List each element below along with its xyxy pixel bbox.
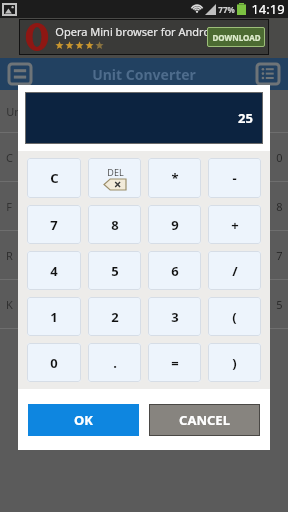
- staticText: /: [232, 262, 238, 280]
- button[interactable]: 9: [148, 205, 201, 244]
- button[interactable]: -: [208, 158, 261, 198]
- staticText: 5: [276, 297, 283, 312]
- staticText: 0: [50, 354, 58, 372]
- button[interactable]: DEL: [88, 158, 141, 198]
- button[interactable]: K: [0, 280, 288, 328]
- staticText: (: [232, 308, 237, 326]
- staticText: Unit Converter: [92, 65, 196, 84]
- button[interactable]: OK: [28, 404, 139, 436]
- button[interactable]: Menu: [9, 64, 31, 84]
- staticText: 9: [171, 216, 179, 234]
- staticText: 1: [50, 308, 58, 326]
- button[interactable]: C: [27, 158, 81, 198]
- button[interactable]: .: [88, 343, 141, 382]
- staticText: *: [171, 169, 179, 187]
- staticText: Opera Mini browser for Android: [55, 24, 220, 39]
- button[interactable]: R: [0, 231, 288, 279]
- button[interactable]: List options: [257, 64, 279, 84]
- button[interactable]: CANCEL: [149, 404, 260, 436]
- staticText: 25: [238, 109, 253, 127]
- staticText: =: [171, 354, 179, 372]
- staticText: CANCEL: [179, 411, 230, 429]
- staticText: R: [6, 248, 13, 263]
- button[interactable]: 1: [27, 297, 81, 336]
- staticText: -: [232, 169, 237, 187]
- button[interactable]: (: [208, 297, 261, 336]
- button[interactable]: F: [0, 182, 288, 230]
- staticText: DOWNLOAD: [212, 32, 261, 43]
- staticText: K: [6, 297, 13, 312]
- button[interactable]: ): [208, 343, 261, 382]
- button[interactable]: Unit: [0, 90, 288, 132]
- button[interactable]: =: [148, 343, 201, 382]
- button[interactable]: Opera Mini browser for Android: [0, 18, 288, 58]
- staticText: C: [6, 150, 13, 165]
- staticText: Unit: [6, 104, 28, 119]
- staticText: 2: [111, 308, 119, 326]
- button[interactable]: 8: [88, 205, 141, 244]
- staticText: ): [232, 354, 237, 372]
- button[interactable]: DOWNLOAD: [207, 27, 265, 47]
- staticText: 8: [111, 216, 119, 234]
- staticText: 6: [171, 262, 179, 280]
- button[interactable]: C: [0, 133, 288, 181]
- staticText: C: [50, 169, 59, 187]
- staticText: 0: [276, 150, 283, 165]
- staticText: 7: [50, 216, 58, 234]
- staticText: OK: [74, 411, 93, 429]
- staticText: +: [231, 216, 239, 234]
- staticText: 4: [50, 262, 58, 280]
- staticText: F: [6, 199, 12, 214]
- button[interactable]: *: [148, 158, 201, 198]
- button[interactable]: 7: [27, 205, 81, 244]
- button[interactable]: 0: [27, 343, 81, 382]
- staticText: 3: [171, 308, 179, 326]
- staticText: 5: [111, 262, 119, 280]
- button[interactable]: /: [208, 251, 261, 290]
- staticText: 7: [276, 248, 283, 263]
- staticText: 14:19: [251, 0, 285, 18]
- button[interactable]: 3: [148, 297, 201, 336]
- button[interactable]: +: [208, 205, 261, 244]
- staticText: 77%: [218, 4, 235, 15]
- staticText: DEL: [107, 166, 124, 178]
- button[interactable]: 4: [27, 251, 81, 290]
- staticText: 8: [276, 199, 283, 214]
- button[interactable]: 6: [148, 251, 201, 290]
- button[interactable]: 5: [88, 251, 141, 290]
- staticText: .: [113, 354, 117, 372]
- button[interactable]: 2: [88, 297, 141, 336]
